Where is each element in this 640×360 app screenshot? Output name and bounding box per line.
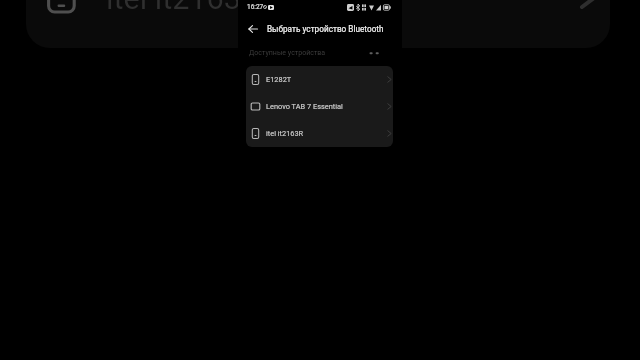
staticText: itel it2163R: [106, 0, 260, 17]
staticText: Lenovo TAB 7 Essential: [266, 102, 343, 111]
staticText: E1282T: [266, 75, 292, 84]
button[interactable]: Lenovo TAB 7 Essential: [246, 93, 393, 120]
button[interactable]: itel it2163R: [246, 120, 393, 147]
staticText: Выбрать устройство Bluetooth: [267, 24, 384, 34]
staticText: Доступные устройства: [249, 48, 326, 56]
button[interactable]: itel it2163R: [26, 0, 610, 48]
staticText: 16:27: [247, 3, 264, 11]
staticText: itel it2163R: [266, 129, 304, 138]
button[interactable]: E1282T: [246, 66, 393, 93]
button[interactable]: Назад: [243, 19, 263, 39]
